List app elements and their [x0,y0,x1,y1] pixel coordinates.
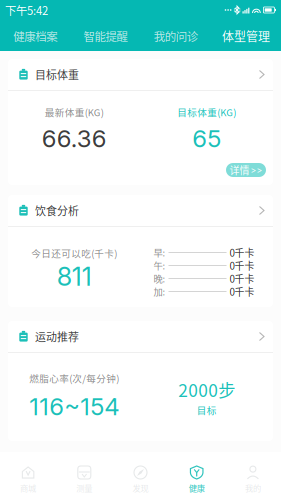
staticText: 健康 [189,482,205,494]
staticText: 今日还可以吃(千卡) [31,246,117,260]
button[interactable]: 商城 [0,452,56,500]
staticText: 我的 [245,482,261,494]
staticText: 测量 [76,482,92,494]
button[interactable]: 体型管理 [211,21,281,51]
staticText: 饮食分析 [35,203,79,218]
staticText: 我的问诊 [154,28,198,44]
staticText: 商城 [20,482,36,494]
button[interactable]: 饮食分析 [8,195,273,226]
staticText: 0千卡 [229,271,254,286]
staticText: 健康档案 [13,28,57,44]
staticText: 目标体重 [35,67,79,82]
staticText: 早: [153,246,165,259]
staticText: 体型管理 [222,27,270,45]
button[interactable]: 我的 [225,452,281,500]
staticText: ⬡ [233,5,240,15]
staticText: 0千卡 [229,245,254,260]
staticText: 加: [153,285,165,298]
staticText: 2000步 [178,377,235,402]
staticText: 116~154 [29,392,119,421]
staticText: 811 [57,261,92,292]
button[interactable]: 测量 [56,452,112,500]
staticText: 晚: [153,272,165,285]
staticText: 65 [192,124,221,153]
staticText: 0千卡 [229,284,254,299]
button[interactable]: 智能提醒 [70,21,140,51]
button[interactable]: 发现 [112,452,169,500]
button[interactable]: 运动推荐 [8,321,273,352]
staticText: 下午5:42 [5,2,48,18]
button[interactable]: 我的问诊 [140,21,211,51]
staticText: >> [250,165,262,175]
staticText: 目标体重(KG) [177,105,236,119]
staticText: 发现 [132,482,148,494]
staticText: 智能提醒 [83,28,127,44]
staticText: 目标 [197,403,217,417]
button[interactable]: 目标体重 [8,59,273,90]
button[interactable]: 健康 [169,452,225,500]
staticText: 详情 [229,163,249,177]
staticText: 66.36 [42,124,107,153]
staticText: 燃脂心率(次/每分钟) [29,371,119,385]
staticText: 午: [153,259,165,272]
button[interactable]: 详情 [226,163,266,177]
staticText: 最新体重(KG) [45,105,104,119]
staticText: 0千卡 [229,258,254,273]
button[interactable]: 健康档案 [0,21,70,51]
staticText: 运动推荐 [35,329,79,344]
